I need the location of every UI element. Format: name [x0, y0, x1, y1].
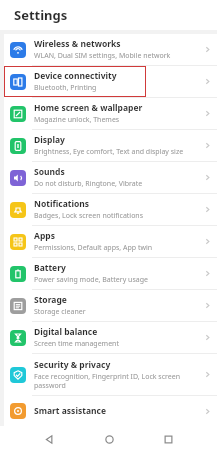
- button[interactable]: Home screen & wallpaper: [4, 98, 217, 129]
- staticText: Storage: [34, 294, 67, 306]
- staticText: Notifications: [34, 198, 90, 210]
- button[interactable]: Security & privacy: [4, 354, 217, 395]
- staticText: Settings: [14, 6, 68, 24]
- staticText: Home screen & wallpaper: [34, 102, 143, 114]
- button[interactable]: Notifications: [4, 194, 217, 225]
- button[interactable]: Back: [38, 428, 60, 450]
- staticText: Battery: [34, 262, 66, 274]
- button[interactable]: Digital balance: [4, 322, 217, 353]
- button[interactable]: Battery: [4, 258, 217, 289]
- staticText: Permissions, Default apps, App twin: [34, 243, 153, 253]
- staticText: Storage cleaner: [34, 307, 86, 317]
- button[interactable]: Sounds: [4, 162, 217, 193]
- staticText: Badges, Lock screen notifications: [34, 211, 144, 221]
- staticText: Smart assistance: [34, 405, 106, 417]
- button[interactable]: Apps: [4, 226, 217, 257]
- staticText: Screen time management: [34, 339, 119, 349]
- staticText: Sounds: [34, 166, 65, 178]
- button[interactable]: Display: [4, 130, 217, 161]
- staticText: Magazine unlock, Themes: [34, 115, 120, 125]
- staticText: Apps: [34, 230, 55, 242]
- staticText: Power saving mode, Battery usage: [34, 275, 148, 285]
- staticText: WLAN, Dual SIM settings, Mobile network: [34, 51, 171, 61]
- button[interactable]: Device connectivity: [4, 66, 217, 97]
- staticText: Brightness, Eye comfort, Text and displa…: [34, 147, 184, 157]
- button[interactable]: Smart assistance: [4, 396, 217, 426]
- button[interactable]: Home: [98, 428, 120, 450]
- staticText: Wireless & networks: [34, 38, 121, 50]
- staticText: Digital balance: [34, 326, 98, 338]
- staticText: Bluetooth, Printing: [34, 83, 97, 93]
- staticText: Do not disturb, Ringtone, Vibrate: [34, 179, 143, 189]
- button[interactable]: Recents: [157, 428, 179, 450]
- button[interactable]: Storage: [4, 290, 217, 321]
- staticText: Face recognition, Fingerprint ID, Lock s…: [34, 372, 180, 390]
- staticText: Device connectivity: [34, 70, 117, 82]
- staticText: Security & privacy: [34, 359, 111, 371]
- staticText: Display: [34, 134, 65, 146]
- button[interactable]: Wireless & networks: [4, 34, 217, 65]
